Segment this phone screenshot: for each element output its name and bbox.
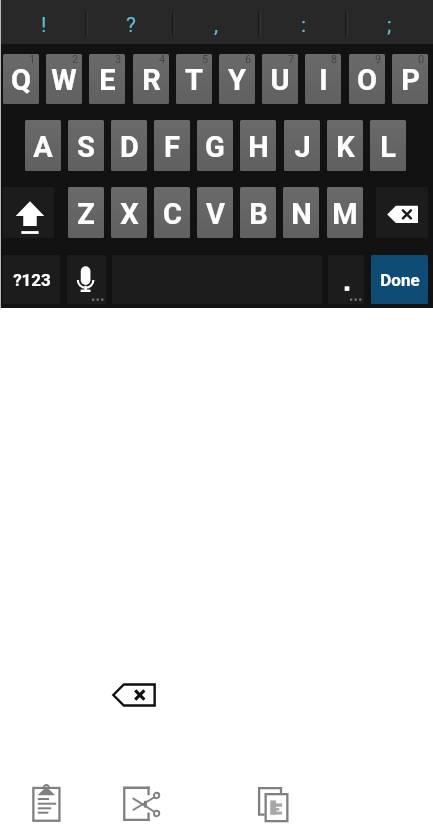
staticText: T — [185, 63, 203, 97]
button[interactable]: A — [25, 120, 61, 171]
staticText: C — [163, 197, 182, 231]
button[interactable]: : — [260, 0, 347, 44]
staticText: W — [51, 63, 77, 97]
button[interactable]: Cut — [118, 778, 164, 829]
staticText: I — [319, 63, 328, 97]
button[interactable]: W — [46, 54, 82, 104]
button[interactable]: K — [327, 120, 363, 171]
staticText: M — [332, 197, 358, 231]
staticText: Done — [380, 270, 420, 290]
staticText: Q — [11, 63, 31, 97]
button[interactable]: Z — [68, 187, 104, 238]
button[interactable]: V — [197, 187, 233, 238]
staticText: X — [120, 197, 139, 231]
staticText: : — [301, 13, 307, 38]
button[interactable]: , — [173, 0, 260, 44]
staticText: G — [205, 130, 225, 164]
button[interactable]: S — [68, 120, 104, 171]
button[interactable]: Period — [328, 255, 364, 304]
staticText: R — [142, 63, 161, 97]
button[interactable]: T — [176, 54, 212, 104]
staticText: 7 — [288, 54, 295, 66]
staticText: Y — [228, 63, 246, 97]
button[interactable]: Paste — [26, 778, 68, 829]
staticText: O — [357, 63, 377, 97]
button[interactable]: D — [111, 120, 147, 171]
button[interactable]: C — [154, 187, 190, 238]
staticText: J — [294, 130, 311, 164]
staticText: U — [270, 63, 290, 97]
button[interactable]: ?123 — [3, 255, 60, 304]
button[interactable]: U — [262, 54, 298, 104]
staticText: ?123 — [13, 270, 51, 290]
button[interactable]: Backspace — [376, 187, 428, 238]
staticText: 6 — [245, 54, 252, 66]
staticText: , — [214, 13, 219, 38]
staticText: D — [120, 130, 139, 164]
button[interactable]: F — [154, 120, 190, 171]
staticText: P — [401, 63, 420, 97]
button[interactable]: Y — [219, 54, 255, 104]
button[interactable]: I — [305, 54, 341, 104]
button[interactable]: Done — [371, 255, 428, 304]
staticText: F — [164, 130, 180, 164]
button[interactable]: X — [111, 187, 147, 238]
staticText: E — [99, 63, 116, 97]
button[interactable]: ; — [346, 0, 433, 44]
button[interactable]: R — [133, 54, 169, 104]
staticText: A — [33, 130, 53, 164]
button[interactable]: N — [283, 187, 319, 238]
staticText: 1 — [29, 54, 36, 66]
staticText: L — [380, 130, 396, 164]
button[interactable]: H — [240, 120, 276, 171]
staticText: K — [336, 130, 355, 164]
staticText: H — [248, 130, 269, 164]
button[interactable]: Q — [3, 54, 39, 104]
button[interactable]: E — [89, 54, 125, 104]
staticText: 3 — [115, 54, 122, 66]
staticText: ; — [387, 13, 392, 38]
staticText: N — [291, 197, 312, 231]
staticText: ? — [126, 13, 136, 38]
staticText: 4 — [159, 54, 166, 66]
button[interactable]: J — [284, 120, 320, 171]
staticText: 5 — [202, 54, 209, 66]
button[interactable]: M — [327, 187, 363, 238]
staticText: 9 — [375, 54, 382, 66]
button[interactable]: Copy — [252, 778, 298, 829]
staticText: 2 — [72, 54, 79, 66]
button[interactable]: Shift — [3, 187, 54, 238]
staticText: 0 — [418, 54, 425, 66]
button[interactable]: G — [197, 120, 233, 171]
button[interactable]: ! — [0, 0, 87, 44]
button[interactable]: Delete — [108, 679, 160, 711]
button[interactable]: ? — [87, 0, 174, 44]
staticText: ! — [41, 13, 47, 38]
button[interactable]: O — [349, 54, 385, 104]
staticText: B — [249, 197, 268, 231]
staticText: 8 — [331, 54, 338, 66]
button[interactable]: Voice input — [67, 255, 106, 304]
staticText: S — [77, 130, 95, 164]
button[interactable]: B — [240, 187, 276, 238]
button[interactable]: P — [392, 54, 428, 104]
button[interactable]: L — [370, 120, 406, 171]
staticText: Z — [77, 197, 95, 231]
staticText: V — [206, 197, 225, 231]
